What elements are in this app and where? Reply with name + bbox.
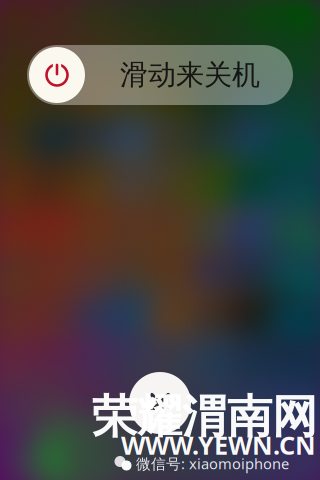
- staticText: 荣耀渭南网: [92, 389, 317, 445]
- button[interactable]: Cancel: [129, 372, 191, 434]
- staticText: 微信号: xiaomoiphone: [136, 454, 289, 473]
- staticText: 滑动来关机: [120, 58, 260, 92]
- button[interactable]: 滑动来关机: [27, 45, 293, 105]
- staticText: WWW.YEWN.CN: [121, 428, 316, 462]
